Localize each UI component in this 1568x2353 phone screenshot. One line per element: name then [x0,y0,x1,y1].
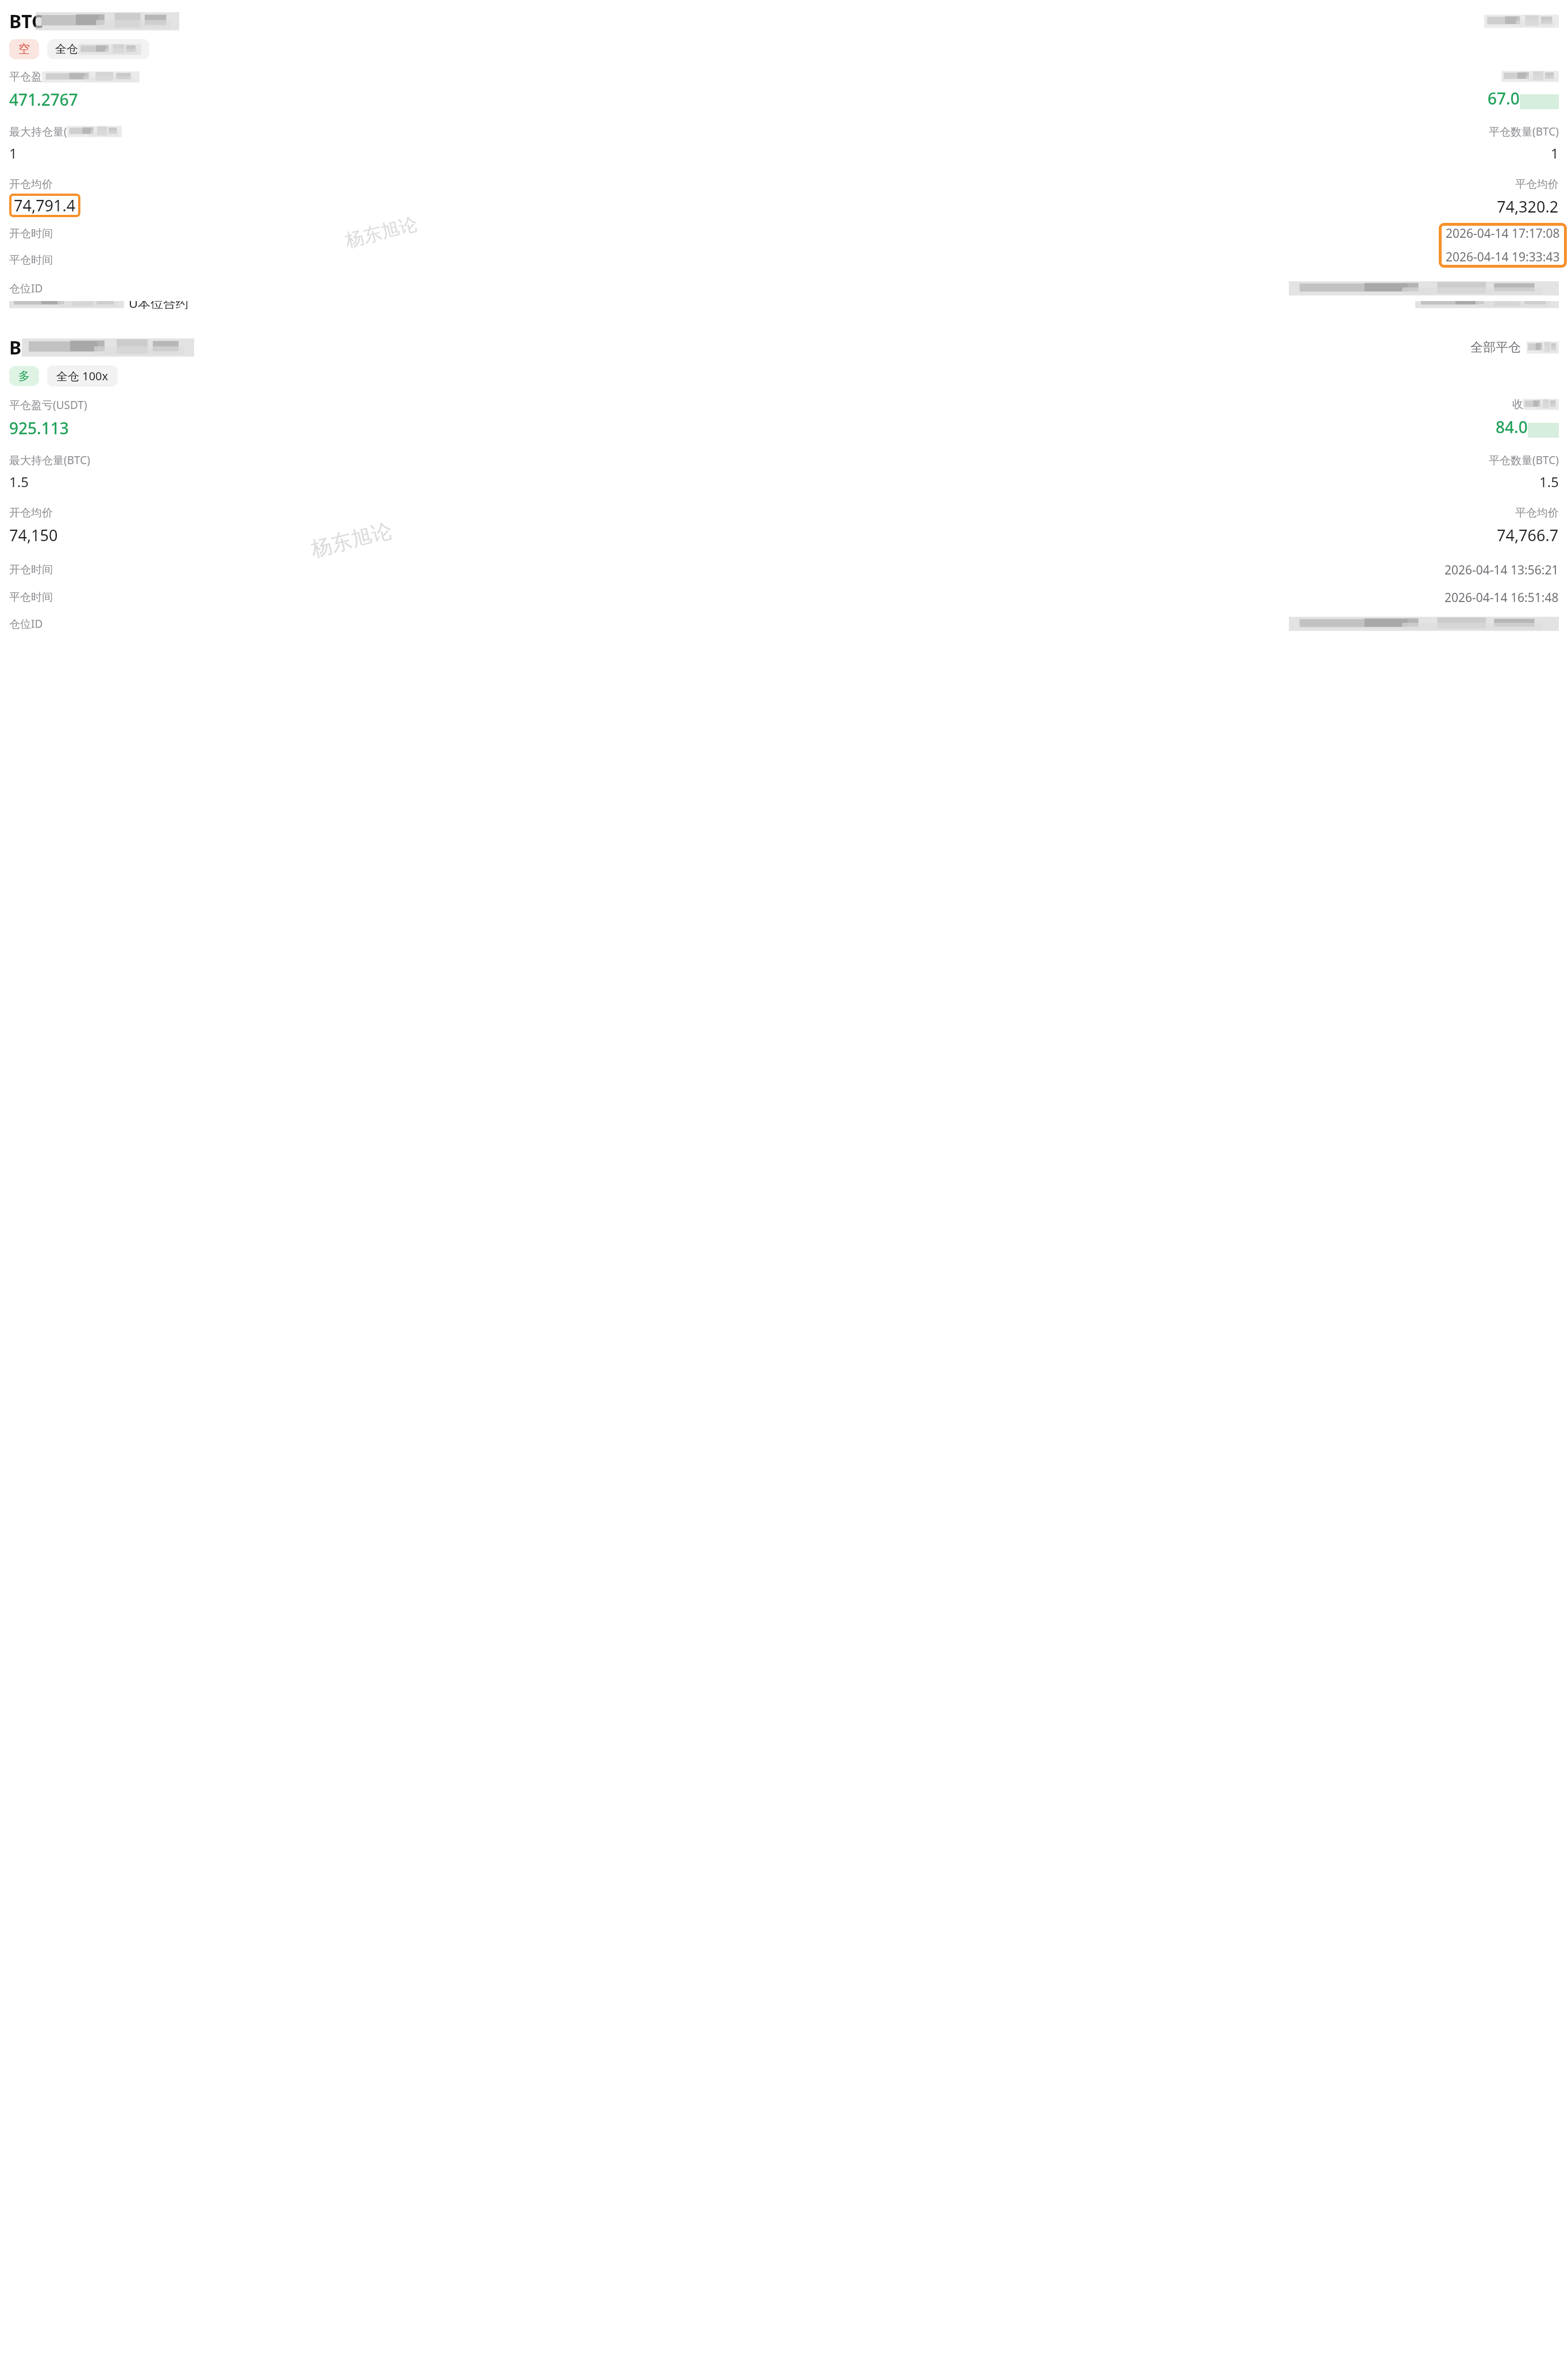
staticText: BTC [9,9,44,34]
staticText: 74,320.2 [1497,196,1559,217]
staticText: 平仓盈亏(USDT) [9,398,87,412]
button[interactable]: 空 [9,39,39,59]
staticText: 74,791.4 [14,195,76,216]
staticText: 1.5 [9,472,29,491]
staticText: 471.2767 [9,88,78,110]
staticText: 开仓均价 [9,506,53,520]
staticText: 全部平仓 [1470,340,1521,356]
staticText: 平仓盈 [9,70,42,84]
staticText: 开仓时间 [9,227,53,241]
staticText: 平仓时间 [9,253,53,267]
staticText: 开仓时间 [9,563,53,577]
staticText: 平仓数量(BTC) [1489,124,1559,139]
staticText: 开仓均价 [9,178,53,191]
staticText: 67.0 [1488,87,1520,109]
staticText: 1 [9,144,17,163]
staticText: 平仓均价 [1515,506,1559,520]
staticText: 全仓 [55,42,78,56]
staticText: 74,766.7 [1497,524,1559,546]
staticText: 平仓数量(BTC) [1489,453,1559,468]
staticText: 杨东旭论 [343,212,420,252]
button[interactable]: 多 [9,366,39,386]
staticText: 74,150 [9,524,58,546]
staticText: 最大持仓量( [9,124,67,139]
staticText: 仓位ID [9,281,43,296]
staticText: 平仓时间 [9,591,53,604]
staticText: 925.113 [9,417,69,439]
staticText: 1 [1551,144,1559,163]
staticText: 收 [1512,398,1523,411]
staticText: 平仓均价 [1515,178,1559,191]
staticText: 2026-04-14 16:51:48 [1445,589,1559,606]
staticText: 2026-04-14 19:33:43 [1446,249,1560,265]
staticText: 84.0 [1496,416,1528,438]
staticText: U本位合约 [129,301,189,309]
staticText: 杨东旭论 [308,517,395,562]
staticText: B [9,335,22,360]
button[interactable]: 全仓 100x [47,365,118,387]
staticText: 多 [18,369,30,383]
staticText: 1.5 [1539,472,1559,491]
button[interactable]: 全仓 [47,39,149,59]
staticText: 空 [18,42,30,56]
staticText: 最大持仓量(BTC) [9,453,90,468]
staticText: 2026-04-14 13:56:21 [1445,562,1559,578]
staticText: 仓位ID [9,616,43,631]
staticText: 全仓 100x [56,368,109,384]
staticText: 2026-04-14 17:17:08 [1446,225,1560,242]
